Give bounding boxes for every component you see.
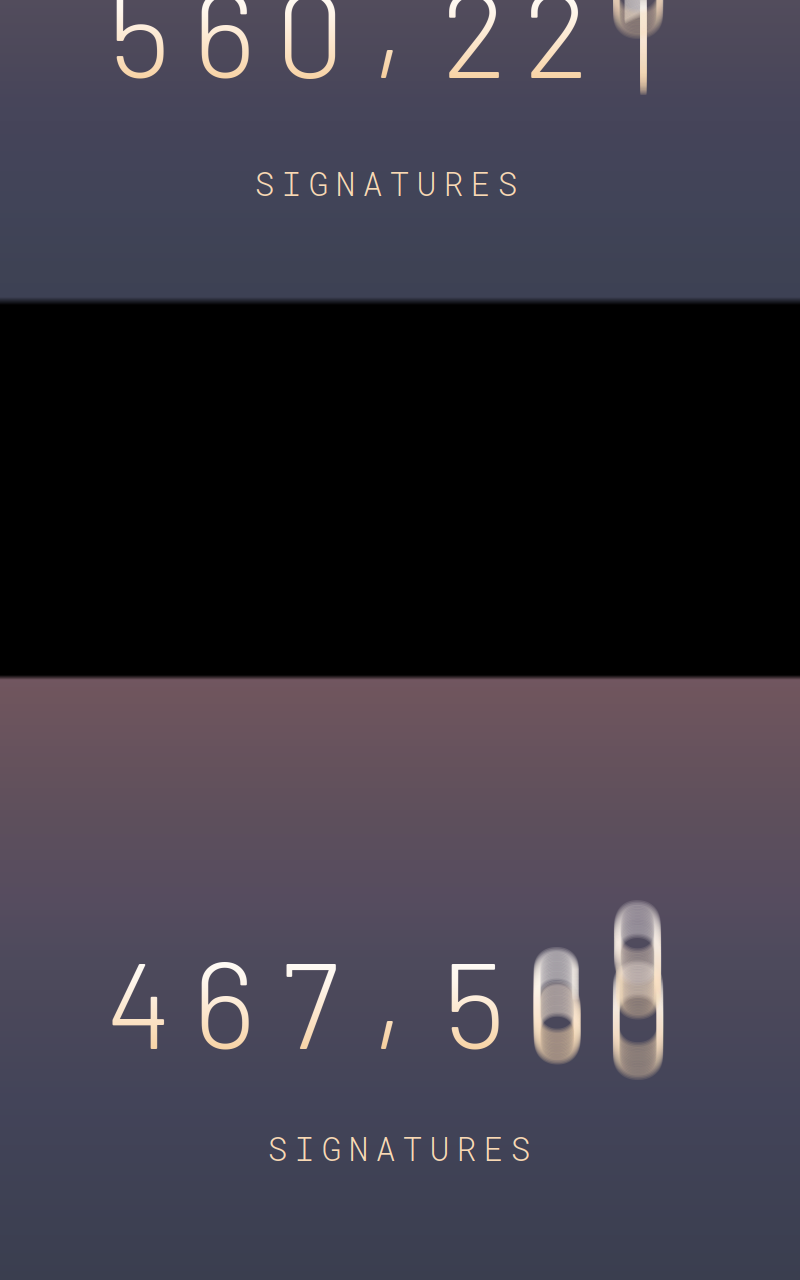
staticText: SIGNATURES — [254, 161, 517, 205]
staticText: SIGNATURES — [267, 1126, 530, 1170]
